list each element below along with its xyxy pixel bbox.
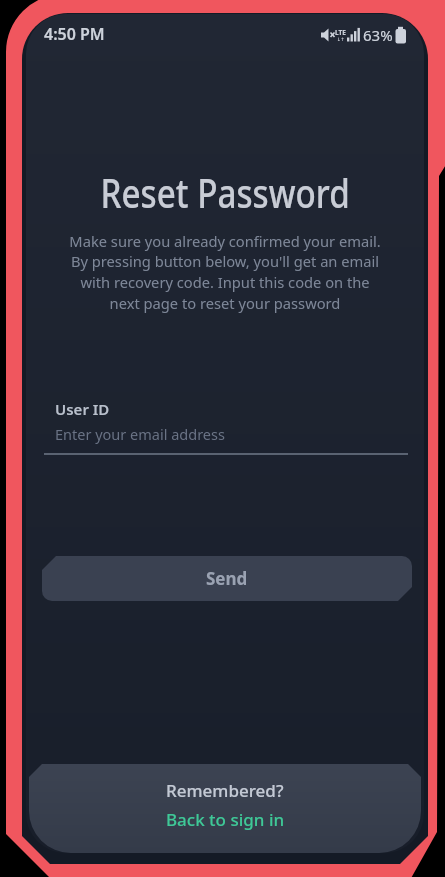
button[interactable]: Back to sign in [166,808,285,831]
staticText: 4:50 PM [44,23,105,45]
staticText: ↓↑ [337,37,345,42]
staticText: Reset Password [101,165,350,219]
staticText: Enter your email address [55,424,225,444]
button[interactable]: Send [42,556,412,601]
staticText: Make sure you already confirmed your ema… [69,231,381,313]
staticText: Remembered? [166,779,284,802]
staticText: User ID [55,399,110,419]
staticText: 63% [363,25,393,45]
staticText: Send [206,567,248,590]
staticText: LTE [335,28,346,37]
